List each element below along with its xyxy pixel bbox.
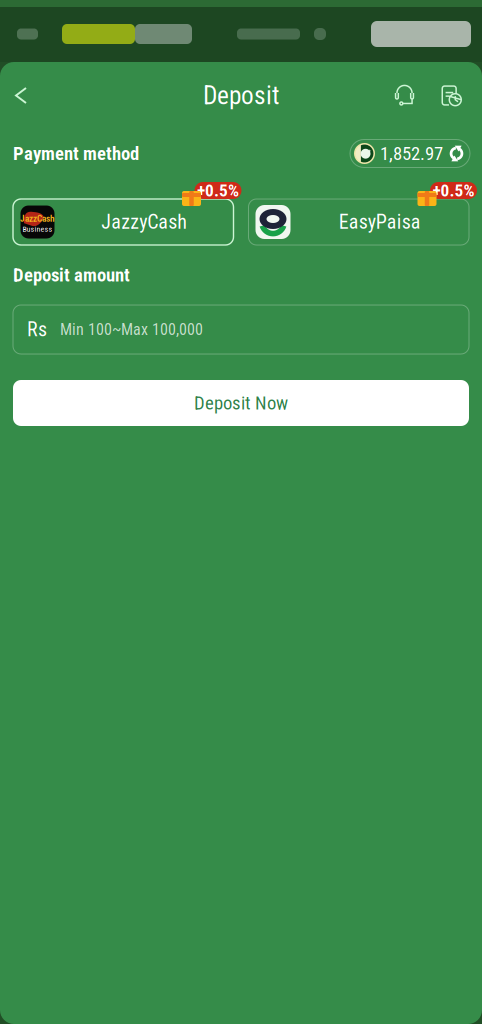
staticText: +0.5% (432, 180, 474, 201)
staticText: Min 100~Max 100,000 (60, 320, 203, 339)
button[interactable]: JazzCash (13, 199, 233, 245)
staticText: Rs (27, 318, 47, 341)
staticText: Deposit Now (194, 392, 288, 414)
button[interactable]: Deposit Now (0, 380, 482, 426)
staticText: 1,852.97 (380, 143, 443, 164)
staticText: Business (22, 224, 52, 234)
button[interactable]: EasyPaisa (248, 199, 469, 245)
staticText: JazzCash (20, 213, 55, 224)
button[interactable]: Customer support (382, 68, 441, 122)
staticText: +0.5% (197, 180, 239, 201)
staticText: JazzyCash (101, 210, 187, 234)
button[interactable]: 1,852.97 (350, 139, 470, 167)
button[interactable]: Back (0, 68, 42, 122)
staticText: EasyPaisa (339, 210, 421, 234)
staticText: Deposit (203, 81, 279, 110)
button[interactable]: Transaction history (441, 68, 482, 122)
staticText: Deposit amount (13, 264, 130, 286)
staticText: Payment method (13, 143, 139, 164)
